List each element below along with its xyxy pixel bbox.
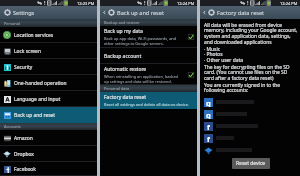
staticText: One-handed operation [14,80,67,87]
staticText: Backup and restore [104,20,140,25]
staticText: You are currently signed in to the follo… [204,82,281,94]
button[interactable]: Back [202,10,207,15]
button[interactable]: Settings [0,6,97,19]
staticText: g [206,110,211,119]
button[interactable]: Security [0,59,97,75]
staticText: g [206,98,211,107]
staticText: Personal [4,21,20,26]
staticText: Settings [13,9,35,17]
button[interactable]: Back [100,6,197,19]
staticText: Reset all settings and delete all data o… [104,102,189,107]
button[interactable] [204,144,300,156]
staticText: f [207,122,210,131]
button[interactable]: Automatic restore [100,64,197,85]
staticText: Accounts [4,124,21,129]
staticText: Automatic restore [104,66,147,73]
button[interactable]: Language and input [0,91,97,107]
staticText: Factory data reset [217,9,265,17]
button[interactable]: Amazon [0,130,97,146]
staticText: 12:24 PM [177,1,195,6]
button[interactable]: g [204,108,300,120]
staticText: 12:23 PM [77,1,95,6]
button[interactable]: f [204,132,300,144]
button[interactable]: One-handed operation [0,75,97,91]
button[interactable]: g [204,96,300,108]
staticText: Dropbox [14,151,34,158]
button[interactable]: Backup account [100,48,197,64]
staticText: Back up my data [104,28,143,35]
button[interactable]: Factory data reset [100,92,197,109]
button[interactable]: Back [200,6,300,19]
staticText: Reset device [236,160,266,167]
staticText: Back up and reset [14,112,56,119]
staticText: Amazon [14,135,33,142]
staticText: When reinstalling an application, backed… [104,74,178,84]
staticText: Back up app data, Wi-Fi passwords, and o… [104,36,177,46]
staticText: Location services [14,32,54,39]
button[interactable]: Back up and reset [0,107,97,123]
button[interactable]: Back [102,10,107,15]
button[interactable]: Back up my data [100,26,197,48]
staticText: Lock screen [14,48,41,55]
staticText: All data will be erased from device memo… [204,22,298,46]
staticText: f [207,134,210,143]
staticText: Factory data reset [104,94,147,101]
button[interactable]: Reset device [232,158,270,169]
button[interactable]: Facebook [0,162,97,176]
button[interactable]: Location services [0,27,97,43]
staticText: Personal data [104,86,130,91]
staticText: Facebook [14,166,36,173]
staticText: Security [14,64,33,71]
staticText: 12:24 PM [280,1,298,6]
button[interactable]: Dropbox [0,146,97,162]
button[interactable]: f [204,120,300,132]
button[interactable]: Lock screen [0,43,97,59]
staticText: The key for decrypting files on the SD c… [204,64,290,82]
staticText: · Music · Photos · Other user data [204,46,243,64]
staticText: Back up and reset [117,9,164,17]
staticText: Language and input [14,96,61,103]
staticText: Backup account [104,53,142,60]
